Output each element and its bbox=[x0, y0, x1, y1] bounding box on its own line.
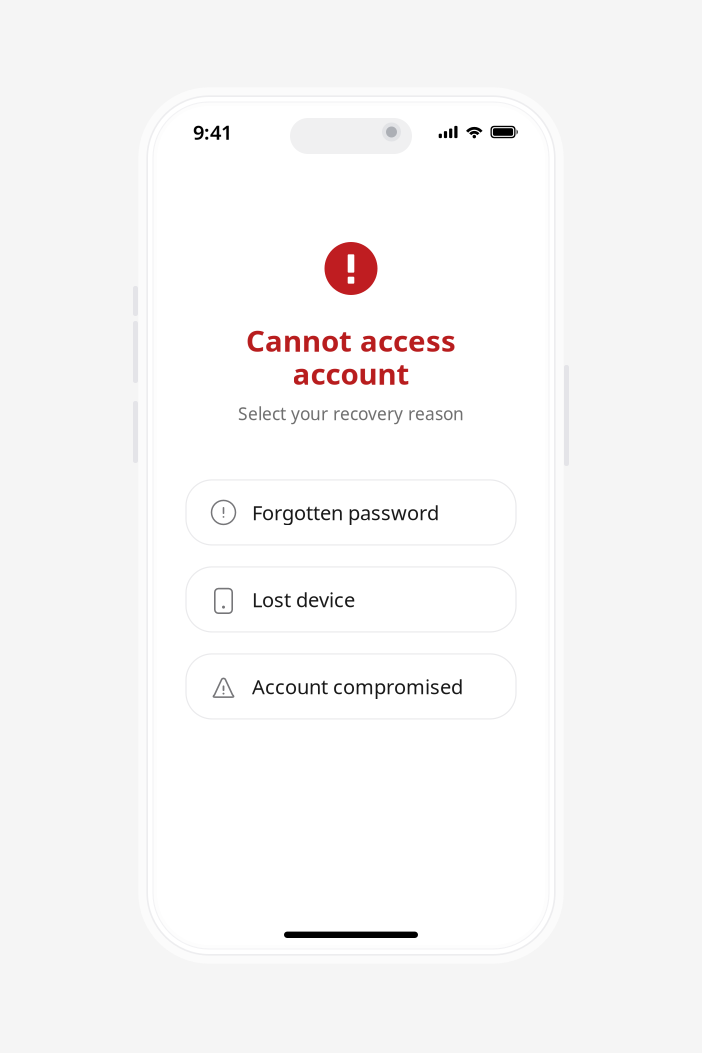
staticText: Forgotten password bbox=[252, 499, 439, 526]
staticText: Cannot access bbox=[246, 321, 456, 360]
staticText: 9:41 bbox=[193, 119, 232, 145]
button[interactable]: Account compromised bbox=[186, 654, 516, 719]
button[interactable]: Forgotten password bbox=[186, 480, 516, 545]
staticText: Account compromised bbox=[252, 673, 463, 700]
button[interactable]: Lost device bbox=[186, 567, 516, 632]
staticText: Lost device bbox=[252, 586, 355, 613]
staticText: account bbox=[292, 354, 409, 393]
staticText: Select your recovery reason bbox=[238, 402, 464, 425]
